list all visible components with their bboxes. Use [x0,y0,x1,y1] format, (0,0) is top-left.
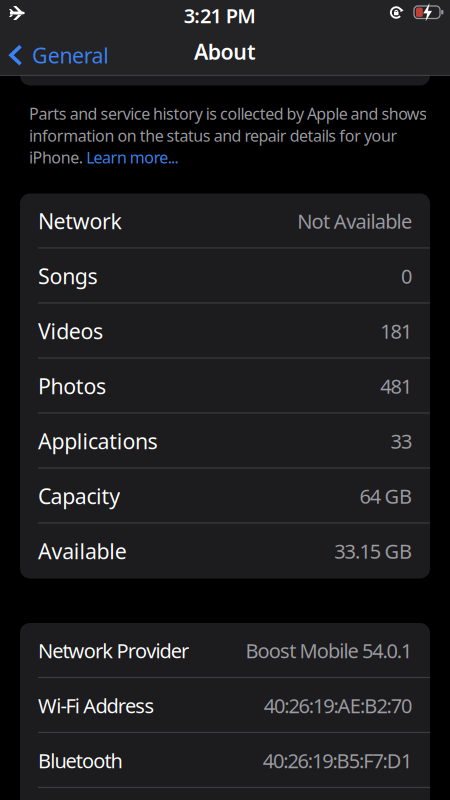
staticText: Network [38,207,122,235]
staticText: Network Provider [38,637,189,664]
staticText: 181 [380,318,412,344]
staticText: 33.15 GB [334,538,412,564]
button[interactable]: Learn more... [86,147,179,168]
staticText: Available [38,537,127,565]
staticText: 64 GB [359,483,412,509]
staticText: Learn more... [86,147,179,168]
staticText: Boost Mobile 54.0.1 [245,637,412,664]
staticText: Songs [38,262,97,290]
staticText: 33 [391,428,412,454]
staticText: 40:26:19:B5:F7:D1 [263,747,412,774]
staticText: Applications [38,427,158,455]
staticText: information on the status and repair det… [29,125,397,146]
staticText: About [194,37,256,66]
staticText: iPhone. [29,147,86,168]
staticText: 0 [401,263,412,289]
staticText: 481 [380,373,412,399]
staticText: Parts and service history is collected b… [29,103,427,124]
staticText: Wi-Fi Address [38,692,154,719]
staticText: Photos [38,372,106,400]
staticText: 3:21 PM [184,2,256,29]
button[interactable]: Back to General [9,41,109,69]
staticText: 40:26:19:AE:B2:70 [264,692,412,719]
staticText: Videos [38,317,103,345]
staticText: Not Available [297,208,412,234]
staticText: Bluetooth [38,747,123,774]
staticText: Capacity [38,482,120,510]
staticText: General [32,41,109,69]
